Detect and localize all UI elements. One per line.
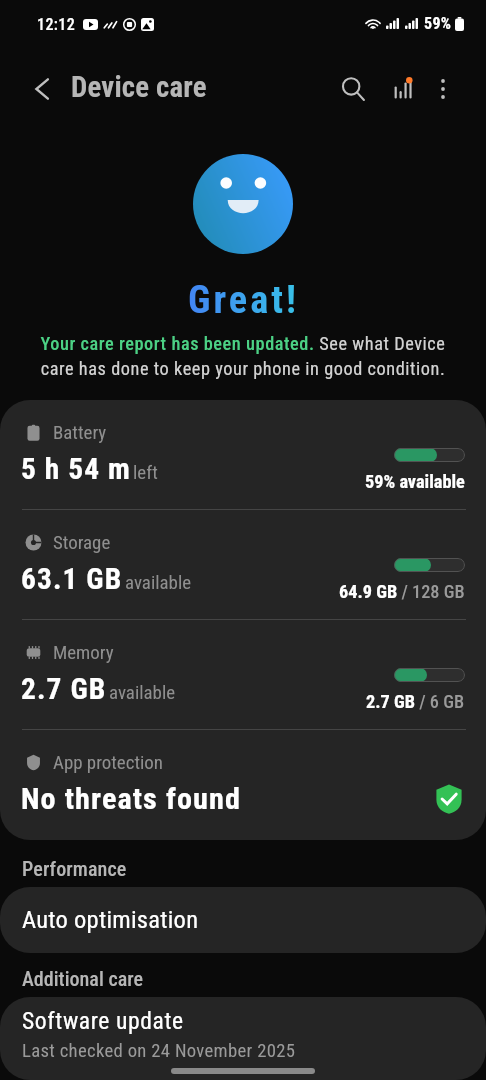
staticText: 2.7 GB <box>21 672 107 706</box>
staticText: Battery <box>53 421 107 443</box>
staticText: 5 h 54 m <box>21 452 131 486</box>
button[interactable]: More options <box>419 65 467 113</box>
staticText: 64.9 GB / 128 GB <box>339 581 465 602</box>
staticText: 2.7 GB / 6 GB <box>366 691 465 712</box>
staticText: 12:12 <box>37 15 76 34</box>
button[interactable]: App protection <box>0 730 486 839</box>
staticText: left <box>133 461 158 483</box>
staticText: Last checked on 24 November 2025 <box>22 1040 296 1062</box>
staticText: 59% available <box>365 471 465 492</box>
button[interactable]: Search <box>329 65 377 113</box>
button[interactable]: Usage statistics <box>378 65 426 113</box>
staticText: Your care report has been updated. See w… <box>36 333 450 379</box>
staticText: available <box>109 681 176 703</box>
staticText: Device care <box>71 70 207 104</box>
button[interactable]: Software update <box>0 997 486 1080</box>
button[interactable]: Storage <box>0 510 486 619</box>
staticText: Performance <box>22 857 127 881</box>
staticText: 59% <box>424 14 452 33</box>
staticText: App protection <box>53 751 163 773</box>
button[interactable]: Auto optimisation <box>0 887 486 953</box>
staticText: Great! <box>188 277 299 322</box>
staticText: 63.1 GB <box>21 562 123 596</box>
staticText: Storage <box>53 531 111 553</box>
staticText: No threats found <box>21 781 242 816</box>
staticText: Additional care <box>22 967 143 991</box>
button[interactable]: Memory <box>0 620 486 729</box>
staticText: Software update <box>22 1007 184 1035</box>
staticText: Auto optimisation <box>22 905 199 934</box>
button[interactable]: Navigate up <box>18 65 66 113</box>
button[interactable]: Battery <box>0 400 486 509</box>
staticText: Memory <box>53 641 114 663</box>
staticText: available <box>125 571 192 593</box>
